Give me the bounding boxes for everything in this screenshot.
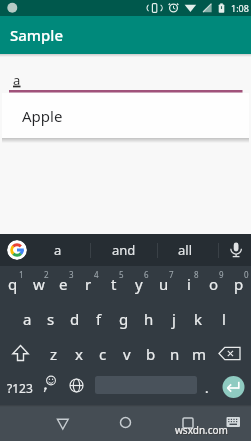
button[interactable]: i (176, 266, 201, 301)
button[interactable]: v (115, 336, 139, 371)
button[interactable] (222, 234, 251, 266)
button[interactable]: t (101, 266, 126, 301)
staticText: . (205, 379, 209, 397)
button[interactable]: h (136, 301, 161, 336)
staticText: l (222, 309, 226, 329)
staticText: v (123, 344, 131, 364)
staticText: 0 (244, 269, 249, 280)
staticText: 5 (119, 269, 124, 280)
button[interactable]: s (39, 301, 63, 336)
button[interactable]: c (91, 336, 115, 371)
staticText: 8 (194, 269, 199, 280)
staticText: u (159, 274, 169, 294)
staticText: q (8, 274, 18, 294)
button[interactable] (61, 371, 92, 405)
button[interactable]: l (211, 301, 236, 336)
button[interactable]: Apple (2, 93, 249, 138)
staticText: 9 (219, 269, 224, 280)
button[interactable]: w (26, 266, 51, 301)
button[interactable]: o (201, 266, 226, 301)
staticText: 3 (69, 269, 74, 280)
staticText: f (96, 309, 102, 329)
staticText: y (135, 274, 143, 294)
button[interactable] (216, 371, 251, 405)
button[interactable]: p (226, 266, 251, 301)
staticText: a (13, 71, 21, 89)
staticText: 6 (144, 269, 149, 280)
button[interactable]: Sample (0, 16, 251, 54)
button[interactable]: a (15, 301, 39, 336)
button[interactable] (7, 240, 27, 260)
button[interactable]: z (41, 336, 66, 371)
staticText: ?123 (7, 380, 33, 396)
button[interactable]: g (111, 301, 136, 336)
staticText: all (178, 241, 193, 259)
staticText: r (85, 274, 92, 294)
staticText: z (50, 344, 58, 364)
button[interactable]: . (197, 371, 216, 405)
staticText: x (75, 344, 83, 364)
staticText: wsxdn.com (176, 424, 229, 438)
staticText: k (194, 309, 203, 329)
staticText: 2 (44, 269, 49, 280)
staticText: 4 (94, 269, 99, 280)
staticText: Sample (10, 25, 63, 45)
button[interactable] (222, 413, 246, 437)
staticText: n (170, 344, 180, 364)
button[interactable]: and (91, 234, 157, 266)
button[interactable]: b (139, 336, 163, 371)
button[interactable]: y (126, 266, 151, 301)
staticText: g (119, 309, 129, 329)
staticText: t (111, 274, 117, 294)
staticText: and (112, 241, 136, 259)
staticText: p (234, 274, 244, 294)
button[interactable] (39, 371, 61, 405)
button[interactable]: r (76, 266, 101, 301)
staticText: h (144, 309, 154, 329)
staticText: o (209, 274, 219, 294)
button[interactable] (0, 336, 41, 371)
staticText: b (146, 344, 156, 364)
staticText: m (192, 344, 207, 364)
button[interactable]: q (0, 266, 26, 301)
staticText: a (23, 309, 32, 329)
button[interactable]: j (161, 301, 186, 336)
staticText: j (172, 309, 176, 329)
staticText: a (54, 241, 62, 259)
button[interactable]: a (33, 234, 83, 266)
button[interactable] (45, 406, 81, 441)
staticText: s (47, 309, 55, 329)
button[interactable]: all (158, 234, 212, 266)
staticText: w (33, 274, 45, 294)
button[interactable]: u (151, 266, 176, 301)
staticText: i (187, 274, 191, 294)
button[interactable]: k (186, 301, 211, 336)
staticText: Apple (22, 106, 63, 126)
staticText: 7 (169, 269, 174, 280)
staticText: e (59, 274, 68, 294)
staticText: 1 (19, 269, 24, 280)
button[interactable]: e (51, 266, 76, 301)
button[interactable]: m (187, 336, 211, 371)
button[interactable] (170, 405, 206, 441)
button[interactable]: d (63, 301, 87, 336)
button[interactable]: n (163, 336, 187, 371)
button[interactable] (108, 405, 144, 441)
button[interactable]: f (87, 301, 111, 336)
staticText: d (70, 309, 80, 329)
staticText: 1:08 (231, 2, 249, 14)
staticText: c (99, 344, 107, 364)
staticText: wsxdn.com (175, 423, 228, 437)
button[interactable]: ?123 (0, 371, 39, 405)
button[interactable]: x (66, 336, 91, 371)
button[interactable] (211, 336, 251, 371)
